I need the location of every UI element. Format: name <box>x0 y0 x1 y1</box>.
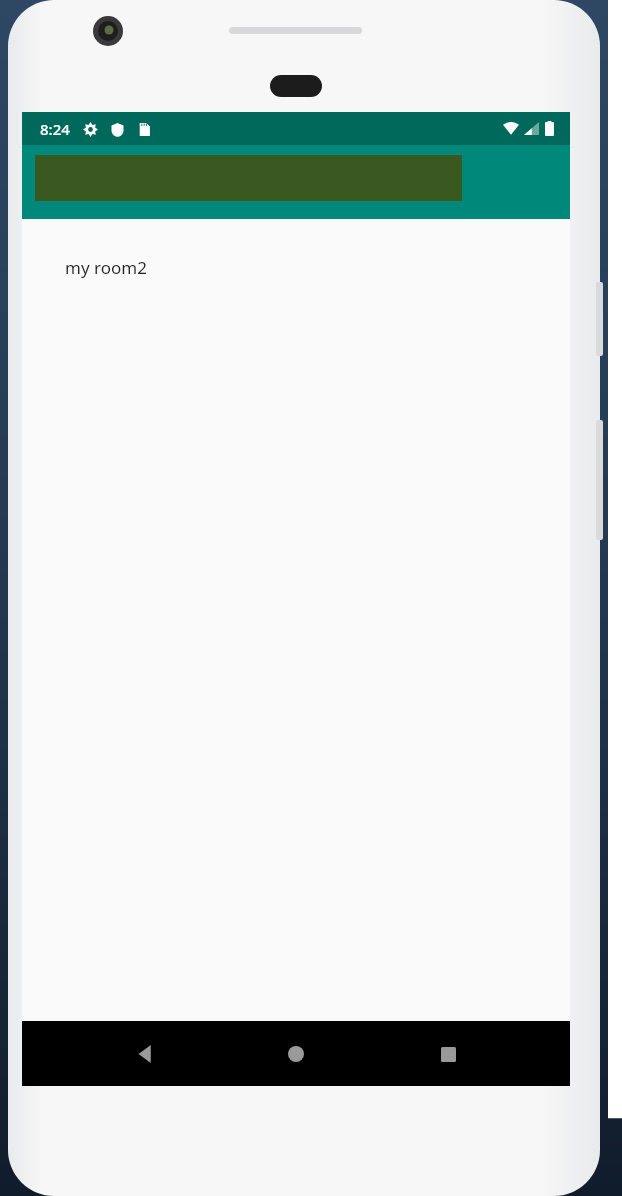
staticText: my room2 <box>65 256 147 279</box>
staticText: 8:24 <box>40 119 70 139</box>
button[interactable]: Home <box>267 1025 325 1083</box>
button[interactable]: Back <box>116 1025 174 1083</box>
button[interactable]: Recent apps <box>419 1025 477 1083</box>
